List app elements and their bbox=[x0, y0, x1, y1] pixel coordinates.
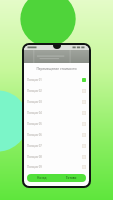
button[interactable]: Позиция 02 bbox=[24, 85, 89, 96]
other: Not selected bbox=[82, 165, 86, 169]
staticText: Позиция 05 bbox=[27, 122, 82, 126]
other: Not selected bbox=[82, 144, 86, 148]
other: Not selected bbox=[82, 122, 86, 126]
staticText: Позиция 09 bbox=[27, 165, 82, 169]
button[interactable]: Позиция 01 bbox=[24, 74, 89, 85]
staticText: Позиция 02 bbox=[27, 89, 82, 93]
staticText: Позиция 01 bbox=[27, 78, 82, 82]
staticText: Готово bbox=[66, 176, 77, 180]
other: Not selected bbox=[82, 111, 86, 115]
other: Selected bbox=[82, 78, 86, 82]
button[interactable]: Позиция 06 bbox=[24, 129, 89, 140]
staticText: Позиция 03 bbox=[27, 100, 82, 104]
button[interactable]: Позиция 07 bbox=[24, 140, 89, 151]
other: Not selected bbox=[82, 155, 86, 159]
other: Not selected bbox=[82, 100, 86, 104]
button[interactable]: Позиция 04 bbox=[24, 107, 89, 118]
staticText: Перемещение стоимости bbox=[36, 67, 77, 71]
staticText: Назад bbox=[37, 176, 47, 180]
button[interactable]: Позиция 05 bbox=[24, 118, 89, 129]
button[interactable]: Позиция 09 bbox=[24, 162, 89, 172]
staticText: Позиция 06 bbox=[27, 133, 82, 137]
other: Not selected bbox=[82, 89, 86, 93]
button[interactable]: Позиция 03 bbox=[24, 96, 89, 107]
staticText: Позиция 08 bbox=[27, 155, 82, 159]
button[interactable]: Готово bbox=[56, 174, 86, 182]
staticText: Позиция 04 bbox=[27, 111, 82, 115]
button[interactable]: Назад bbox=[27, 174, 56, 182]
staticText: Позиция 07 bbox=[27, 144, 82, 148]
button[interactable]: Позиция 08 bbox=[24, 151, 89, 162]
other: Not selected bbox=[82, 133, 86, 137]
